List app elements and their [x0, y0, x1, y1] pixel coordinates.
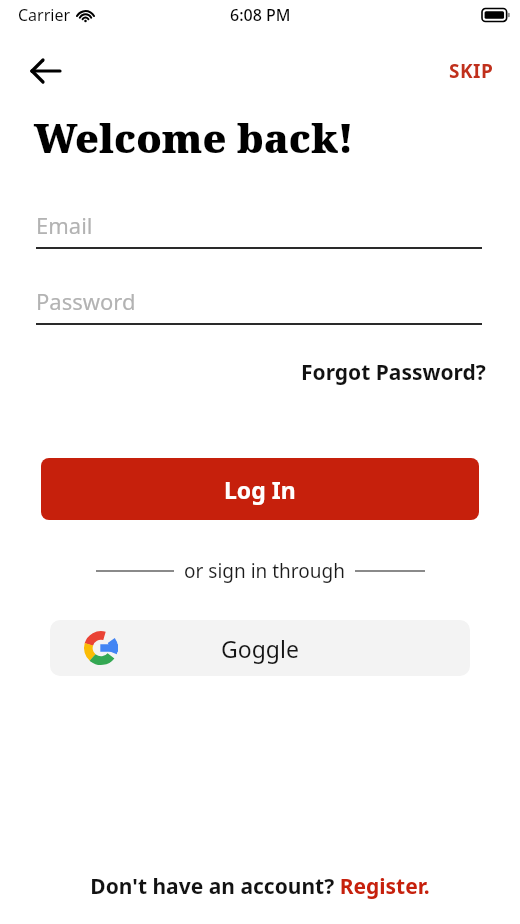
staticText: or sign in through — [184, 558, 345, 584]
staticText: Don't have an account? Register. — [90, 872, 430, 901]
button[interactable]: SKIP — [439, 52, 504, 90]
button[interactable]: Don't have an account? Register. — [82, 868, 438, 905]
staticText: Carrier — [18, 4, 71, 26]
button[interactable]: Log In — [41, 458, 479, 520]
staticText: Log In — [224, 474, 296, 505]
staticText: Goggle — [221, 633, 299, 664]
button[interactable]: Back — [26, 48, 72, 94]
staticText: Email — [36, 210, 93, 240]
button[interactable]: Password — [36, 286, 482, 333]
staticText: 6:08 PM — [230, 4, 291, 26]
staticText: Password — [36, 286, 136, 316]
button[interactable]: Forgot Password? — [297, 354, 490, 391]
staticText: Forgot Password? — [301, 358, 486, 387]
button[interactable]: Email — [36, 210, 482, 257]
staticText: SKIP — [449, 58, 494, 84]
staticText: Welcome back! — [34, 110, 354, 164]
button[interactable]: Goggle — [50, 620, 470, 676]
